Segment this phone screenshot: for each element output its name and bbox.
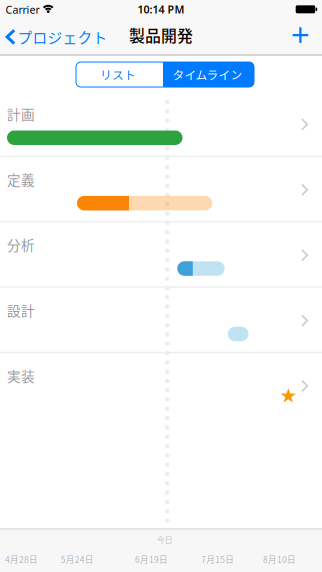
staticText: 4月28日 bbox=[5, 553, 38, 565]
staticText: 計画 bbox=[7, 104, 35, 124]
staticText: リスト bbox=[100, 66, 136, 83]
button[interactable]: プロジェクト bbox=[0, 20, 112, 52]
staticText: Carrier bbox=[6, 3, 40, 17]
button[interactable]: 計画 bbox=[0, 90, 322, 155]
staticText: タイムライン bbox=[172, 66, 242, 83]
button[interactable]: 実装 bbox=[0, 352, 322, 417]
staticText: 5月24日 bbox=[61, 553, 94, 565]
staticText: 定義 bbox=[7, 169, 35, 189]
staticText: プロジェクト bbox=[17, 26, 107, 47]
button[interactable]: リスト bbox=[76, 62, 165, 87]
staticText: 6月19日 bbox=[135, 553, 168, 565]
button[interactable]: 設計 bbox=[0, 286, 322, 352]
staticText: 製品開発 bbox=[129, 23, 193, 46]
button[interactable]: 追加 bbox=[293, 27, 308, 43]
button[interactable]: 分析 bbox=[0, 221, 322, 286]
staticText: 7月15日 bbox=[201, 553, 234, 565]
button[interactable]: タイムライン bbox=[76, 62, 254, 87]
button[interactable]: 定義 bbox=[0, 155, 322, 221]
staticText: 設計 bbox=[7, 300, 35, 320]
staticText: 実装 bbox=[7, 366, 35, 385]
staticText: 8月10日 bbox=[263, 553, 296, 565]
staticText: 10:14 PM bbox=[137, 2, 184, 17]
staticText: 今日 bbox=[156, 533, 172, 545]
staticText: 分析 bbox=[7, 235, 35, 254]
